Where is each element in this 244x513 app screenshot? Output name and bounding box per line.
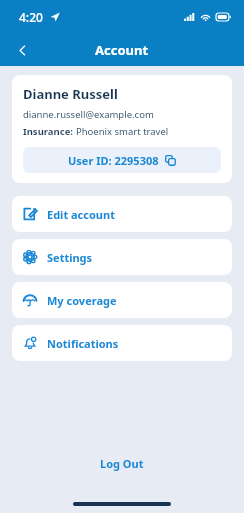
staticText: Dianne Russell	[23, 85, 118, 103]
staticText: Edit account	[47, 207, 115, 222]
staticText: dianne.russell@example.com	[23, 108, 154, 121]
button[interactable]: Notifications	[12, 325, 232, 361]
staticText: Settings	[47, 250, 93, 265]
staticText: Log Out	[100, 456, 144, 471]
staticText: Phoenix smart travel	[76, 125, 169, 138]
staticText: Insurance:	[23, 125, 73, 138]
staticText: Notifications	[47, 336, 119, 351]
staticText: My coverage	[47, 293, 117, 308]
button[interactable]: My coverage	[12, 282, 232, 318]
button[interactable]: Back	[9, 37, 35, 63]
button[interactable]: Edit account	[12, 196, 232, 232]
staticText: User ID: 2295308	[68, 153, 159, 168]
staticText: 4:20	[19, 9, 43, 25]
button[interactable]: Settings	[12, 239, 232, 275]
button[interactable]: User ID: 2295308	[23, 147, 221, 173]
staticText: Account	[95, 41, 149, 59]
button[interactable]: Log Out	[90, 452, 154, 475]
